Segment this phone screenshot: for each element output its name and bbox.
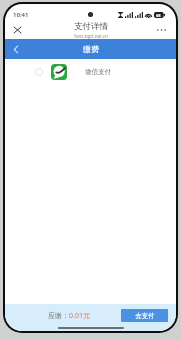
staticText: 68 [156, 13, 161, 18]
button[interactable]: Close [9, 22, 25, 38]
staticText: 支付详情 [74, 21, 108, 32]
staticText: 缴费 [83, 44, 99, 54]
staticText: 微信支付 [85, 68, 111, 76]
staticText: 去支付 [135, 312, 155, 320]
staticText: funs.tqpt.net.cn [74, 33, 108, 39]
button[interactable]: 去支付 [121, 309, 168, 322]
button[interactable]: 微信支付 [5, 59, 176, 85]
staticText: 0.01元 [69, 311, 90, 321]
button[interactable]: Back [9, 42, 23, 56]
staticText: 应缴： [48, 311, 69, 320]
button[interactable]: More options [153, 22, 169, 38]
staticText: 10:41 [13, 11, 29, 19]
